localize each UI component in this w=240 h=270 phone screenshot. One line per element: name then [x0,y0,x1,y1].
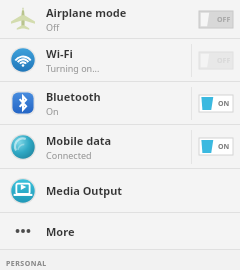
staticText: Airplane mode [46,5,127,20]
button[interactable]: Mobile data toggle [199,138,233,155]
staticText: Connected [46,149,92,161]
button[interactable]: Bluetooth toggle [199,95,233,112]
staticText: Turning on... [46,62,100,74]
staticText: Wi-Fi [46,46,73,61]
button[interactable]: Media Output [0,169,240,212]
staticText: Bluetooth [46,89,101,104]
button[interactable]: Airplane mode [0,0,240,38]
staticText: Media Output [46,183,123,198]
staticText: More [46,224,75,239]
button[interactable]: Wi-Fi [0,39,240,81]
staticText: OFF [217,15,231,25]
staticText: On [46,105,59,117]
button[interactable]: Wi-Fi toggle [199,52,233,69]
staticText: Mobile data [46,133,112,148]
staticText: ON [218,142,230,152]
button[interactable]: Bluetooth [0,82,240,124]
button[interactable]: More [0,213,240,249]
staticText: ON [218,99,230,109]
button[interactable]: Airplane mode toggle [199,11,233,28]
button[interactable]: Mobile data [0,125,240,168]
staticText: OFF [217,56,231,66]
staticText: Off [46,21,60,33]
staticText: PERSONAL [6,259,47,269]
